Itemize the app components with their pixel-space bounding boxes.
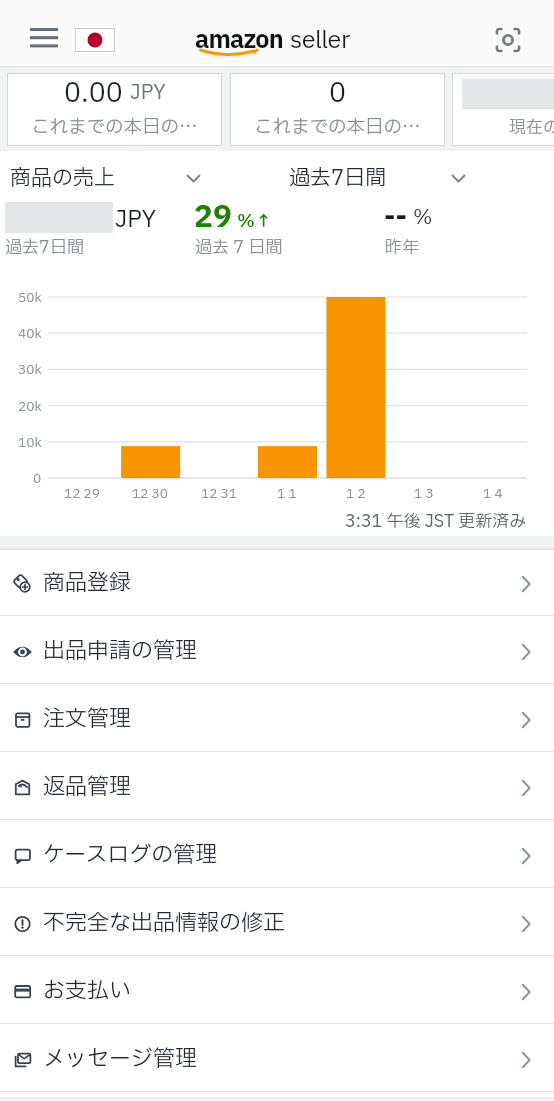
staticText: JPY — [130, 78, 166, 108]
staticText: 1 3 — [414, 484, 434, 502]
staticText: 現在の出品数 — [509, 115, 554, 140]
staticText: ケースログの管理 — [43, 839, 218, 872]
staticText: amazon — [195, 23, 283, 59]
staticText: これまでの本日の… — [31, 113, 198, 141]
staticText: 1 4 — [483, 484, 503, 502]
staticText: seller — [290, 23, 350, 59]
staticText: お支払い — [43, 975, 132, 1008]
staticText: 返品管理 — [43, 771, 132, 804]
staticText: JPY — [115, 203, 157, 237]
staticText: 商品の売上 — [10, 163, 115, 194]
button[interactable]: ケースログの管理 — [0, 820, 554, 888]
staticText: -- — [384, 197, 407, 237]
staticText: 12 29 — [64, 484, 100, 502]
staticText: %↑ — [237, 208, 273, 235]
staticText: 注文管理 — [43, 703, 132, 736]
button[interactable]: 不完全な出品情報の修正 — [0, 888, 554, 956]
staticText: 1 2 — [346, 484, 366, 502]
staticText: 30k — [18, 360, 42, 378]
staticText: 12 30 — [132, 484, 168, 502]
staticText: 過去7日間 — [289, 163, 387, 194]
button[interactable]: 商品の売上 — [10, 163, 200, 194]
staticText: これまでの本日の… — [254, 113, 421, 141]
staticText: 3:31 午後 JST 更新済み — [345, 509, 527, 534]
button[interactable]: 0.00 — [7, 73, 222, 146]
button[interactable]: メッセージ管理 — [0, 1024, 554, 1092]
button[interactable]: お支払い — [0, 956, 554, 1024]
button[interactable]: 0 — [230, 73, 445, 146]
staticText: 不完全な出品情報の修正 — [43, 907, 286, 940]
button[interactable]: 注文管理 — [0, 684, 554, 752]
staticText: 0 — [33, 469, 42, 487]
staticText: 50k — [18, 288, 42, 306]
button[interactable]: 現在の出品数 — [452, 73, 554, 146]
staticText: 出品申請の管理 — [43, 635, 198, 668]
staticText: 20k — [18, 397, 42, 415]
staticText: 29 — [194, 195, 232, 240]
staticText: 商品登録 — [43, 567, 132, 600]
button[interactable]: 過去7日間 — [289, 163, 465, 194]
staticText: 10k — [18, 433, 42, 451]
staticText: 過去7日間 — [5, 235, 84, 260]
staticText: 1 1 — [277, 484, 297, 502]
staticText: 40k — [18, 324, 42, 342]
staticText: メッセージ管理 — [43, 1043, 198, 1076]
button[interactable] — [30, 26, 58, 48]
staticText: 0.00 — [64, 73, 123, 111]
button[interactable] — [75, 28, 115, 52]
staticText: 昨年 — [385, 235, 419, 260]
staticText: % — [413, 203, 433, 233]
button[interactable]: 商品登録 — [0, 548, 554, 616]
staticText: 12 31 — [201, 484, 237, 502]
staticText: 0 — [329, 73, 347, 111]
button[interactable] — [494, 26, 522, 54]
button[interactable]: 返品管理 — [0, 752, 554, 820]
button[interactable]: 出品申請の管理 — [0, 616, 554, 684]
staticText: 過去 7 日間 — [195, 235, 283, 260]
